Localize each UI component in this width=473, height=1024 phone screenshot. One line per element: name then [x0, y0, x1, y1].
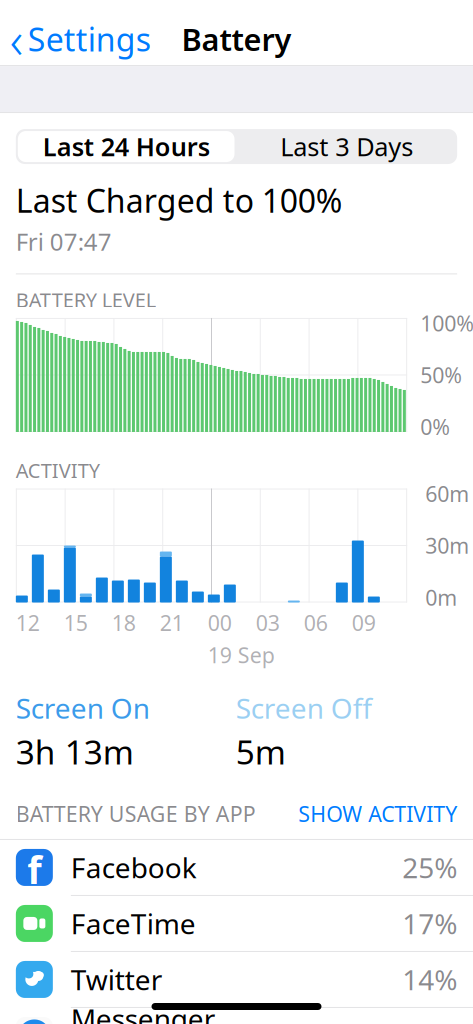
staticText: BATTERY USAGE BY APP [16, 800, 256, 828]
staticText: Messenger [71, 1000, 216, 1024]
staticText: Facebook [71, 849, 197, 886]
staticText: 21 [160, 608, 184, 637]
button[interactable]: SHOW ACTIVITY [298, 800, 457, 828]
staticText: 14% [402, 961, 457, 998]
button[interactable]: f [0, 840, 473, 896]
staticText: ACTIVITY [16, 457, 100, 484]
staticText: 18 [112, 608, 136, 637]
staticText: Screen On [16, 689, 150, 726]
button[interactable]: FaceTime [0, 896, 473, 952]
staticText: Last 3 Days [280, 130, 413, 163]
staticText: 5m [236, 729, 286, 774]
staticText: 0m [425, 583, 457, 611]
button[interactable]: Twitter [0, 952, 473, 1008]
staticText: 3h 13m [16, 729, 134, 774]
staticText: Settings [28, 18, 151, 60]
staticText: SHOW ACTIVITY [298, 800, 457, 828]
button[interactable]: Last 3 Days [236, 129, 457, 164]
staticText: 12 [16, 608, 40, 637]
staticText: BATTERY LEVEL [16, 286, 156, 313]
staticText: 30m [425, 531, 469, 560]
staticText: 09 [352, 608, 376, 637]
staticText: 19 Sep [208, 641, 275, 669]
staticText: Last 24 Hours [43, 130, 210, 163]
staticText: Fri 07:47 [16, 225, 112, 257]
staticText: 15 [64, 608, 88, 637]
button[interactable]: ‹ [0, 17, 165, 61]
button[interactable]: Messenger [0, 1008, 473, 1024]
staticText: 100% [420, 309, 473, 337]
staticText: Battery [181, 19, 291, 59]
staticText: Twitter [71, 961, 163, 998]
staticText: f [27, 845, 41, 894]
staticText: 50% [420, 361, 462, 389]
staticText: 25% [402, 849, 457, 886]
staticText: Last Charged to 100% [16, 179, 343, 221]
button[interactable]: Last 24 Hours [16, 129, 236, 164]
staticText: 06 [304, 608, 328, 637]
staticText: 60m [425, 479, 469, 508]
staticText: Screen Off [236, 689, 372, 726]
staticText: 0% [420, 413, 450, 441]
staticText: 03 [256, 608, 280, 637]
staticText: ‹ [10, 5, 23, 73]
staticText: FaceTime [71, 905, 196, 942]
staticText: 00 [208, 608, 232, 637]
staticText: 17% [402, 905, 457, 942]
